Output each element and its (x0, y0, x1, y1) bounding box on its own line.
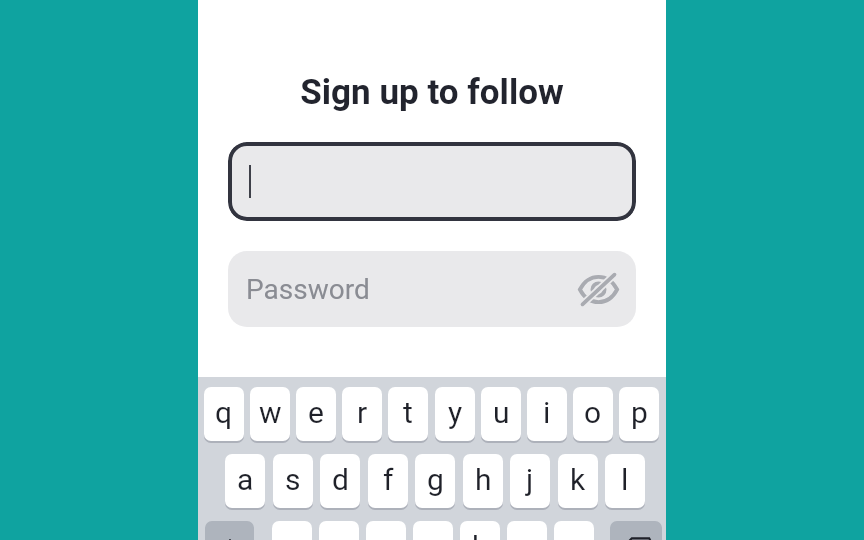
staticText: w (259, 395, 282, 430)
button[interactable]: g (415, 454, 455, 508)
staticText: Password (246, 273, 370, 306)
staticText: s (285, 462, 301, 497)
button[interactable]: n (507, 521, 547, 540)
button[interactable]: Backspace (610, 521, 662, 540)
staticText: r (357, 395, 368, 430)
staticText: a (237, 462, 254, 497)
button[interactable]: p (619, 387, 659, 441)
staticText: u (493, 395, 510, 430)
staticText: p (631, 395, 648, 430)
staticText: f (383, 462, 394, 497)
button[interactable]: s (273, 454, 313, 508)
button[interactable]: Show password (572, 263, 624, 315)
staticText: l (621, 462, 629, 497)
button[interactable] (228, 142, 636, 221)
button[interactable]: q (204, 387, 244, 441)
button[interactable]: b (460, 521, 500, 540)
staticText: d (332, 462, 349, 497)
button[interactable]: u (481, 387, 521, 441)
staticText: g (427, 462, 444, 497)
button[interactable]: a (225, 454, 265, 508)
staticText: j (526, 462, 534, 497)
staticText: i (543, 395, 551, 430)
staticText: k (570, 462, 586, 497)
button[interactable]: o (573, 387, 613, 441)
button[interactable]: l (605, 454, 645, 508)
button[interactable]: x (319, 521, 359, 540)
button[interactable]: w (250, 387, 290, 441)
button[interactable]: Password (228, 251, 636, 327)
button[interactable]: e (296, 387, 336, 441)
staticText: o (584, 395, 602, 430)
button[interactable]: y (435, 387, 475, 441)
staticText: Sign up to follow (198, 72, 666, 113)
button[interactable]: v (413, 521, 453, 540)
button[interactable]: k (558, 454, 598, 508)
button[interactable]: r (342, 387, 382, 441)
button[interactable]: z (272, 521, 312, 540)
button[interactable]: i (527, 387, 567, 441)
button[interactable]: t (388, 387, 428, 441)
button[interactable]: c (366, 521, 406, 540)
staticText: t (403, 395, 413, 430)
button[interactable]: j (510, 454, 550, 508)
button[interactable]: Shift (205, 521, 254, 540)
staticText: y (448, 395, 463, 430)
button[interactable]: d (320, 454, 360, 508)
staticText: e (308, 395, 324, 430)
button[interactable]: f (368, 454, 408, 508)
button[interactable]: m (554, 521, 594, 540)
staticText: q (215, 395, 233, 430)
button[interactable]: h (463, 454, 503, 508)
staticText: h (475, 462, 492, 497)
staticText: b (472, 529, 489, 540)
